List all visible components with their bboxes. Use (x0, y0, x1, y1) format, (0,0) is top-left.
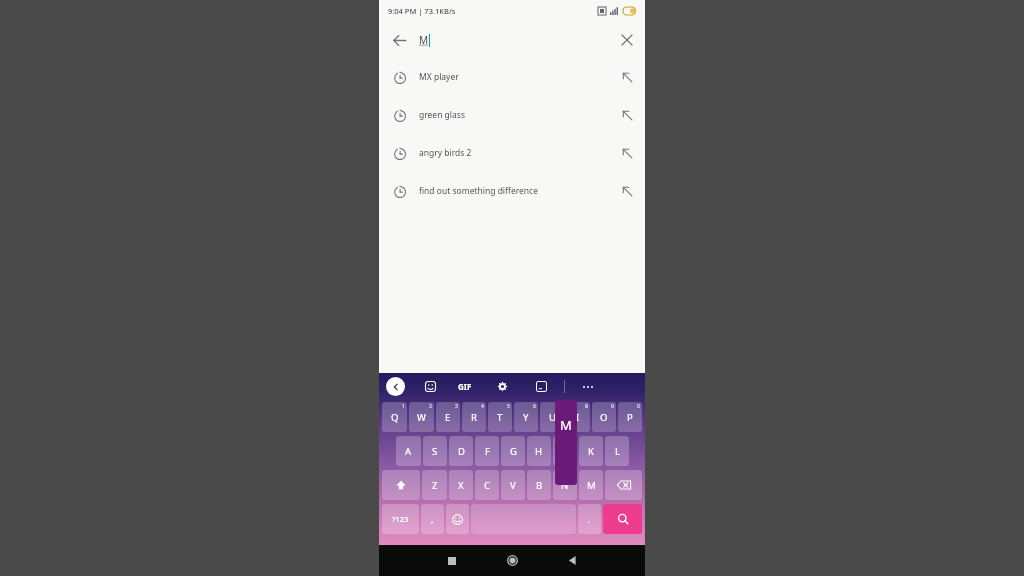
staticText: ?123 (392, 514, 409, 524)
button[interactable]: More options (579, 378, 596, 395)
staticText: 4 (481, 403, 484, 410)
staticText: F (485, 445, 490, 458)
staticText: W (417, 411, 426, 424)
staticText: 8 (585, 403, 588, 410)
staticText: T (497, 411, 503, 424)
staticText: Y (523, 411, 529, 424)
button[interactable]: Emoji (422, 378, 439, 395)
button[interactable]: , (421, 504, 444, 534)
staticText: D (458, 445, 465, 458)
staticText: M (419, 33, 429, 47)
staticText: Z (432, 479, 438, 492)
staticText: 2 (429, 403, 432, 410)
staticText: I (576, 411, 580, 424)
button[interactable]: A (396, 436, 421, 466)
button[interactable]: L (605, 436, 629, 466)
button[interactable]: F (475, 436, 499, 466)
staticText: N (561, 479, 569, 492)
button[interactable]: V (501, 470, 525, 500)
staticText: U (549, 411, 556, 424)
staticText: angry birds 2 (419, 147, 472, 159)
button[interactable]: Back (379, 22, 419, 58)
button[interactable]: green glass (379, 96, 645, 134)
button[interactable]: Translate (533, 378, 550, 395)
staticText: M (587, 479, 596, 492)
staticText: B (536, 479, 543, 492)
button[interactable]: U (540, 402, 564, 432)
button[interactable]: Emoji (446, 504, 469, 534)
staticText: 6 (533, 403, 536, 410)
staticText: E (445, 411, 451, 424)
button[interactable]: E (436, 402, 460, 432)
staticText: M (560, 416, 572, 434)
staticText: R (471, 411, 477, 424)
button[interactable]: Q (382, 402, 407, 432)
staticText: 1 (402, 403, 405, 410)
staticText: S (432, 445, 438, 458)
staticText: O (600, 411, 608, 424)
button[interactable]: MX player (379, 58, 645, 96)
button[interactable]: N (553, 470, 577, 500)
button[interactable]: R (462, 402, 486, 432)
button[interactable]: Insert MX player (609, 58, 645, 96)
button[interactable]: I (566, 402, 590, 432)
staticText: 3 (455, 403, 458, 410)
button[interactable]: Z (422, 470, 447, 500)
button[interactable]: S (423, 436, 447, 466)
button[interactable]: X (449, 470, 473, 500)
button[interactable]: Home (482, 545, 542, 576)
staticText: G (510, 445, 517, 458)
staticText: 0 (637, 403, 640, 410)
staticText: GIF (458, 381, 472, 392)
button[interactable]: Settings (494, 378, 511, 395)
staticText: X (458, 479, 464, 492)
button[interactable]: Clear (609, 22, 645, 58)
staticText: Q (391, 411, 399, 424)
staticText: 5 (507, 403, 510, 410)
button[interactable]: D (449, 436, 473, 466)
button[interactable]: GIF (458, 381, 472, 392)
staticText: P (627, 411, 633, 424)
button[interactable]: Insert green glass (609, 96, 645, 134)
button[interactable]: Backspace (605, 470, 642, 500)
button[interactable]: W (409, 402, 434, 432)
staticText: . (588, 514, 591, 525)
button[interactable]: T (488, 402, 512, 432)
staticText: 9:04 PM | 73.1KB/s (388, 6, 456, 16)
staticText: A (405, 445, 412, 458)
button[interactable]: Back (386, 377, 405, 396)
staticText: L (615, 445, 620, 458)
button[interactable]: find out something difference (379, 172, 645, 210)
button[interactable]: Insert angry birds 2 (609, 134, 645, 172)
button[interactable]: B (527, 470, 551, 500)
button[interactable]: H (527, 436, 551, 466)
staticText: find out something difference (419, 185, 538, 197)
button[interactable]: ?123 (382, 504, 419, 534)
staticText: 9 (611, 403, 614, 410)
staticText: MX player (419, 71, 459, 83)
button[interactable]: Recents (422, 545, 482, 576)
staticText: K (588, 445, 594, 458)
button[interactable]: J (553, 436, 577, 466)
button[interactable]: Space (471, 504, 576, 534)
button[interactable]: Shift (382, 470, 420, 500)
button[interactable]: Back (542, 545, 602, 576)
button[interactable]: . (578, 504, 601, 534)
button[interactable]: Y (514, 402, 538, 432)
staticText: H (535, 445, 543, 458)
button[interactable]: O (592, 402, 616, 432)
button[interactable]: M (579, 470, 603, 500)
button[interactable]: P (618, 402, 642, 432)
button[interactable]: G (501, 436, 525, 466)
button[interactable]: C (475, 470, 499, 500)
staticText: green glass (419, 109, 465, 121)
button[interactable]: Search (603, 504, 642, 534)
button[interactable]: Insert find out something difference (609, 172, 645, 210)
button[interactable]: angry birds 2 (379, 134, 645, 172)
staticText: , (431, 514, 434, 525)
staticText: C (484, 479, 491, 492)
staticText: V (510, 479, 516, 492)
button[interactable]: K (579, 436, 603, 466)
